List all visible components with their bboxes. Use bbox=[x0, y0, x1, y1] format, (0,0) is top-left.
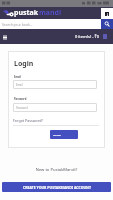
staticText: New to PustakMandi? bbox=[0, 167, 113, 173]
staticText: CREATE YOUR PUSTAKMANDI ACCOUNT bbox=[23, 185, 91, 190]
button[interactable]: Email bbox=[13, 80, 97, 89]
button[interactable]: LOGIN bbox=[50, 130, 78, 139]
staticText: 0 item(s) - ₹0 bbox=[75, 34, 100, 39]
staticText: Email bbox=[16, 83, 23, 87]
staticText: Login bbox=[14, 59, 34, 69]
button[interactable]: Forgot Password? bbox=[13, 118, 43, 123]
button[interactable]: CREATE YOUR PUSTAKMANDI ACCOUNT bbox=[2, 182, 111, 192]
button[interactable]: Search bbox=[101, 19, 113, 29]
staticText: pustak bbox=[14, 8, 39, 18]
button[interactable]: Menu bbox=[1, 33, 9, 41]
staticText: Email bbox=[14, 75, 22, 79]
staticText: mandi bbox=[39, 8, 62, 18]
staticText: Search your book... bbox=[2, 22, 33, 27]
button[interactable]: Cart bbox=[103, 34, 107, 39]
button[interactable]: Password bbox=[13, 103, 97, 112]
button[interactable]: My Account bbox=[101, 8, 113, 19]
staticText: LOGIN bbox=[53, 133, 61, 136]
staticText: Password bbox=[16, 106, 28, 110]
staticText: Password bbox=[14, 97, 27, 101]
